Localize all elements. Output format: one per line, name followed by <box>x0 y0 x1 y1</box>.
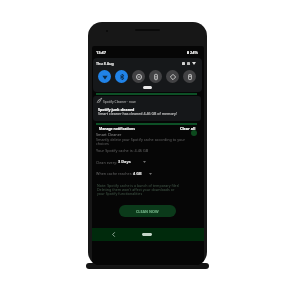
staticText: 24% <box>190 50 198 55</box>
button[interactable]: Collapse shade <box>143 86 152 89</box>
button[interactable]: Back <box>111 232 116 237</box>
button[interactable]: Battery saver <box>183 70 196 83</box>
button[interactable]: Clear all <box>180 126 196 131</box>
staticText: 13:47 <box>96 50 106 55</box>
button[interactable]: Manage notifications <box>99 126 135 131</box>
staticText: Smart cleaner has cleaned 4.46 GB of mem… <box>98 111 177 116</box>
staticText: Note: Spotify cache is a bunch of tempor… <box>97 183 181 196</box>
staticText: Smart Cleaner <box>96 132 122 137</box>
button[interactable]: 3 Days <box>118 159 131 164</box>
button[interactable]: Home <box>142 233 152 236</box>
button[interactable]: Battery <box>187 62 190 65</box>
staticText: Clean every: <box>96 160 118 165</box>
button[interactable]: Spotify Cleaner · now <box>93 96 201 121</box>
button[interactable]: Settings <box>182 62 185 65</box>
button[interactable]: Do not disturb <box>132 70 145 83</box>
button[interactable]: Flashlight <box>149 70 162 83</box>
button[interactable]: CLEAN NOW <box>119 205 176 217</box>
staticText: Spotify Cleaner · now <box>103 99 136 103</box>
button[interactable]: Internet <box>98 70 111 83</box>
staticText: Spotify junk cleaned <box>98 107 135 112</box>
staticText: When cache reaches: <box>96 171 133 176</box>
staticText: CLEAN NOW <box>136 209 159 214</box>
staticText: Thu 8 Aug <box>96 61 114 66</box>
button[interactable]: Expand <box>192 62 196 65</box>
button[interactable]: Bluetooth <box>115 70 128 83</box>
staticText: Your Spotify cache is: 4.46 GB <box>96 148 149 153</box>
button[interactable]: 4 GB <box>133 171 142 176</box>
button[interactable]: Smart Cleaner icon <box>191 130 197 136</box>
staticText: Smartly delete your Spotify cache accord… <box>96 137 190 146</box>
button[interactable]: Auto rotate <box>166 70 179 83</box>
